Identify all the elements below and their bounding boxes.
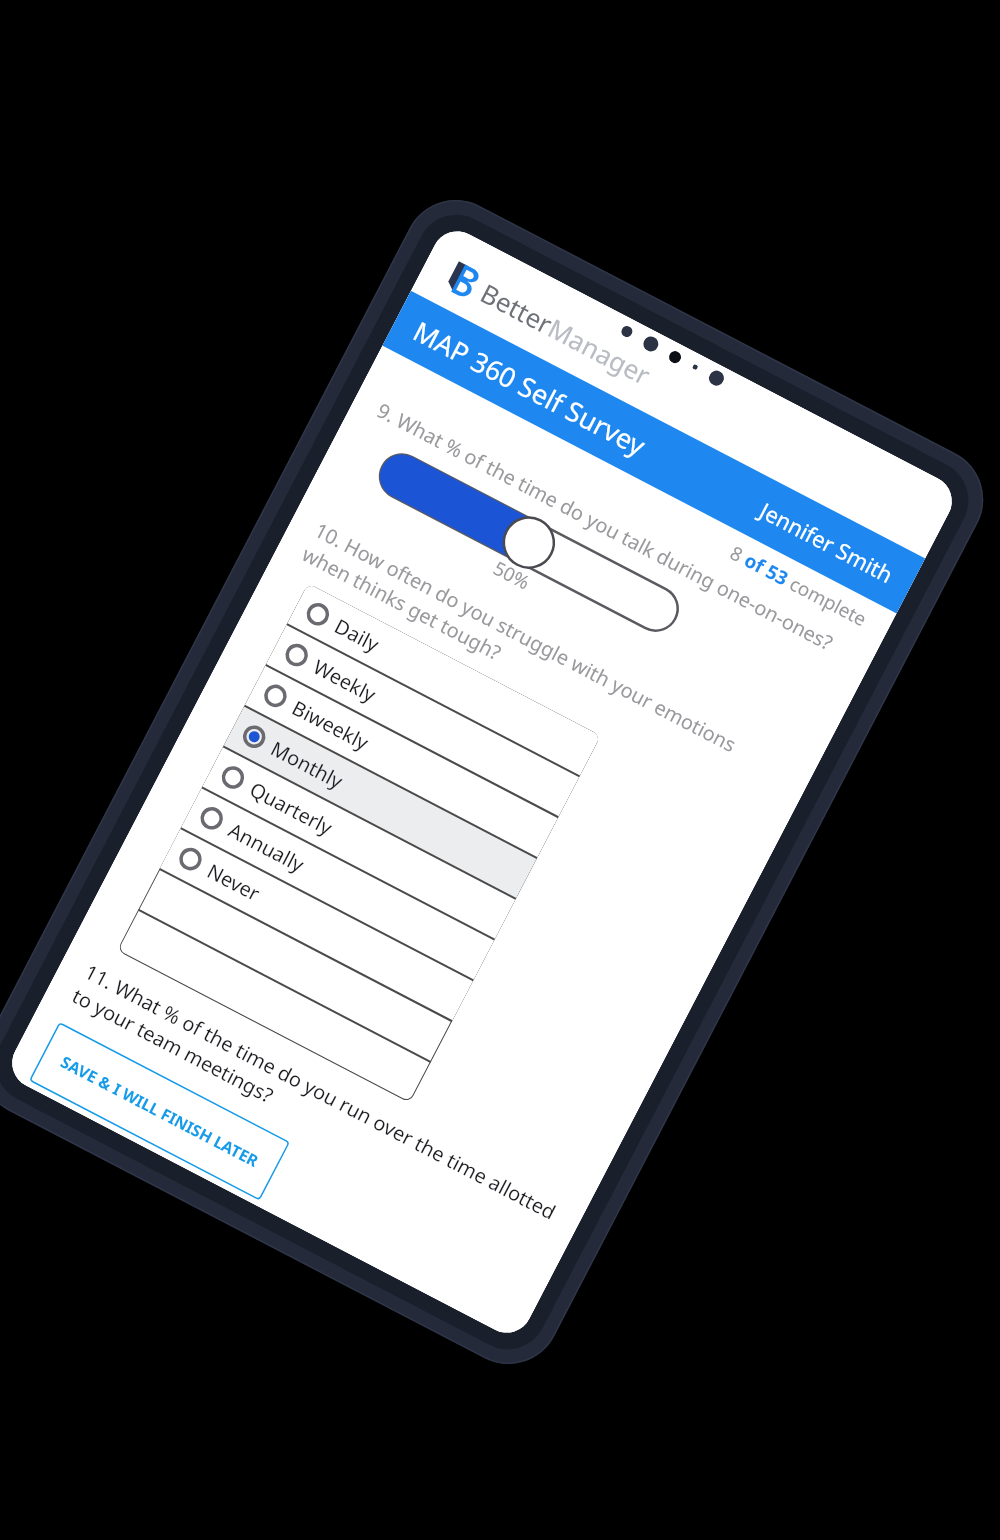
button[interactable]: Never xyxy=(159,828,473,1021)
staticText: Jennifer Smith xyxy=(755,495,898,589)
staticText: 9. What % of the time do you talk during… xyxy=(372,397,838,657)
staticText: 8 xyxy=(726,540,752,570)
staticText: Never xyxy=(203,857,265,907)
button[interactable]: Percentage slider, 50 percent xyxy=(372,447,685,638)
button[interactable]: Annually xyxy=(181,787,495,980)
button[interactable]: Quarterly xyxy=(202,746,516,940)
staticText: 11. What % of the time do you run over t… xyxy=(68,958,561,1250)
staticText: 10. How often do you struggle with your … xyxy=(298,516,791,808)
staticText: Better xyxy=(475,275,559,341)
staticText: Monthly xyxy=(266,735,348,795)
staticText: complete xyxy=(781,568,872,633)
staticText: SAVE & I WILL FINISH LATER xyxy=(57,1051,263,1172)
staticText: Biweekly xyxy=(288,694,374,756)
button[interactable]: Daily xyxy=(287,583,601,776)
button[interactable]: SAVE & I WILL FINISH LATER xyxy=(29,1022,290,1201)
button[interactable]: Monthly xyxy=(223,706,537,899)
staticText: Manager xyxy=(542,310,657,392)
staticText: Weekly xyxy=(309,653,381,708)
button[interactable]: Biweekly xyxy=(244,665,558,858)
staticText: 50% xyxy=(489,555,535,596)
staticText: of 53 xyxy=(740,547,793,591)
staticText: Annually xyxy=(224,816,309,878)
button[interactable]: Weekly xyxy=(266,624,580,817)
staticText: Daily xyxy=(330,612,384,658)
staticText: Quarterly xyxy=(245,776,337,841)
staticText: MAP 360 Self Survey xyxy=(407,312,652,464)
